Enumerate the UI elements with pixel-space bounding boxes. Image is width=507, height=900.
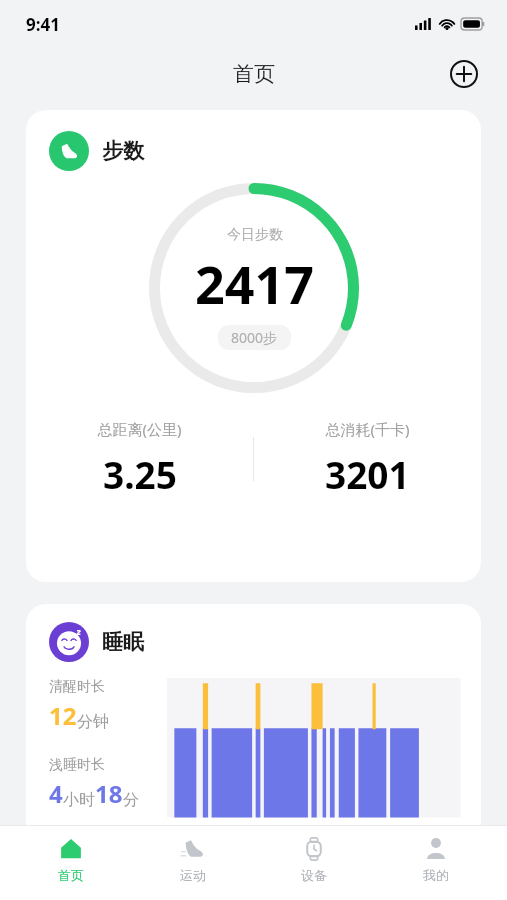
staticText: 总消耗(千卡) — [325, 419, 410, 439]
staticText: 我的 — [423, 867, 449, 883]
staticText: 8000步 — [231, 328, 278, 347]
staticText: 3201 — [325, 449, 410, 499]
button[interactable]: 运动 — [143, 826, 243, 883]
staticText: 3.25 — [103, 449, 177, 499]
staticText: 今日步数 — [227, 226, 283, 244]
button[interactable]: 我的 — [386, 826, 486, 883]
staticText: 9:41 — [26, 13, 60, 36]
staticText: 分 — [123, 790, 139, 810]
button[interactable]: 设备 — [264, 826, 364, 883]
staticText: 2417 — [195, 248, 314, 319]
staticText: 首页 — [233, 61, 275, 87]
staticText: 4 — [49, 777, 63, 810]
button[interactable]: 首页 — [21, 826, 121, 883]
staticText: 总距离(公里) — [97, 419, 182, 439]
staticText: 浅睡时长 — [49, 756, 105, 774]
staticText: 小时 — [63, 790, 95, 810]
staticText: 12 — [49, 699, 77, 732]
staticText: 首页 — [58, 867, 84, 883]
staticText: 分钟 — [77, 712, 109, 732]
button[interactable]: 步数 — [26, 110, 481, 582]
staticText: 清醒时长 — [49, 678, 105, 696]
staticText: 18 — [95, 777, 123, 810]
staticText: 设备 — [301, 867, 327, 883]
button[interactable]: 睡眠 — [26, 604, 481, 854]
staticText: 睡眠 — [102, 629, 144, 655]
staticText: 运动 — [180, 867, 206, 883]
staticText: 步数 — [102, 138, 144, 164]
button[interactable]: Add — [449, 59, 479, 89]
